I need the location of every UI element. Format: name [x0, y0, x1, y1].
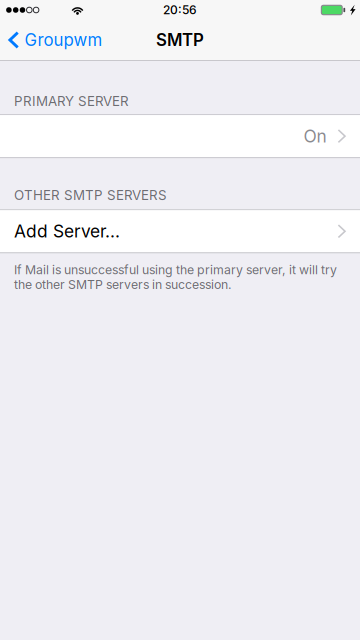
staticText: 20:56: [163, 3, 197, 17]
staticText: Groupwm: [24, 30, 102, 50]
staticText: On: [304, 126, 327, 147]
staticText: Add Server…: [14, 221, 120, 242]
staticText: PRIMARY SERVER: [14, 93, 129, 109]
staticText: SMTP: [156, 30, 204, 50]
button[interactable]: Groupwm: [0, 20, 112, 60]
button[interactable]: Add Server…: [0, 210, 360, 252]
staticText: If Mail is unsuccessful using the primar…: [14, 262, 337, 292]
button[interactable]: On: [0, 115, 360, 157]
staticText: OTHER SMTP SERVERS: [14, 187, 167, 203]
